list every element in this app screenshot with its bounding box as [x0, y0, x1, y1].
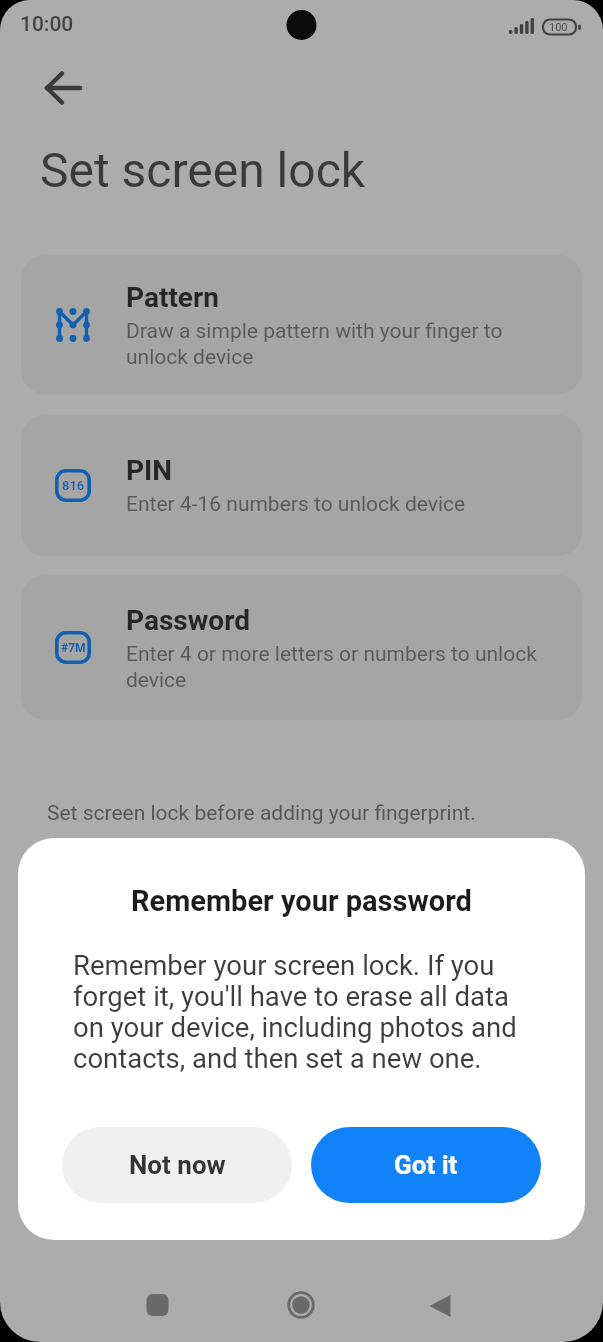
button[interactable]	[417, 1283, 463, 1329]
staticText: #7M	[61, 641, 86, 655]
button[interactable]: #7M	[21, 575, 582, 720]
staticText: Password	[126, 604, 250, 637]
staticText: Got it	[394, 1150, 458, 1180]
button[interactable]: Pattern	[21, 255, 582, 394]
staticText: Not now	[129, 1150, 226, 1180]
button[interactable]	[34, 62, 86, 114]
staticText: 100	[549, 21, 568, 34]
staticText: 10:00	[20, 12, 74, 37]
staticText: Enter 4-16 numbers to unlock device	[126, 492, 466, 517]
button[interactable]: 816	[21, 415, 582, 556]
staticText: PIN	[126, 454, 173, 487]
button[interactable]	[134, 1283, 180, 1329]
button[interactable]: Got it	[311, 1127, 541, 1203]
staticText: Pattern	[126, 281, 219, 314]
staticText: 816	[62, 478, 85, 493]
staticText: Enter 4 or more letters or numbers to un…	[126, 642, 537, 692]
button[interactable]	[278, 1283, 324, 1329]
staticText: Remember your password	[131, 884, 472, 918]
staticText: Draw a simple pattern with your finger t…	[126, 319, 503, 369]
staticText: Set screen lock	[40, 142, 366, 198]
button[interactable]: Not now	[62, 1127, 292, 1203]
staticText: Remember your screen lock. If you forget…	[73, 949, 517, 1074]
staticText: Set screen lock before adding your finge…	[47, 801, 476, 826]
